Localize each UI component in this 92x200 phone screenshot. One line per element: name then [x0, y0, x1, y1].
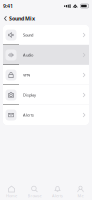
- staticText: Display: [23, 92, 36, 98]
- button[interactable]: Display: [3, 85, 89, 105]
- staticText: 9:41: [3, 2, 13, 10]
- button[interactable]: VPN: [3, 65, 89, 85]
- button[interactable]: Home: [0, 184, 23, 200]
- staticText: Audio: [23, 52, 33, 58]
- staticText: Sound: [23, 32, 33, 38]
- staticText: Alerts: [52, 193, 63, 198]
- staticText: Alerts: [23, 112, 34, 118]
- button[interactable]: Alerts: [3, 105, 89, 125]
- staticText: VPN: [23, 72, 30, 78]
- staticText: Browse: [27, 193, 41, 198]
- button[interactable]: Back: [0, 13, 9, 24]
- staticText: Sound Mix: [9, 15, 35, 22]
- button[interactable]: Alerts: [46, 184, 69, 200]
- button[interactable]: Browse: [23, 184, 46, 200]
- staticText: Home: [6, 193, 17, 198]
- button[interactable]: Me: [69, 184, 92, 200]
- button[interactable]: Sound: [3, 25, 89, 45]
- button[interactable]: Audio: [3, 45, 89, 65]
- staticText: Me: [77, 193, 83, 198]
